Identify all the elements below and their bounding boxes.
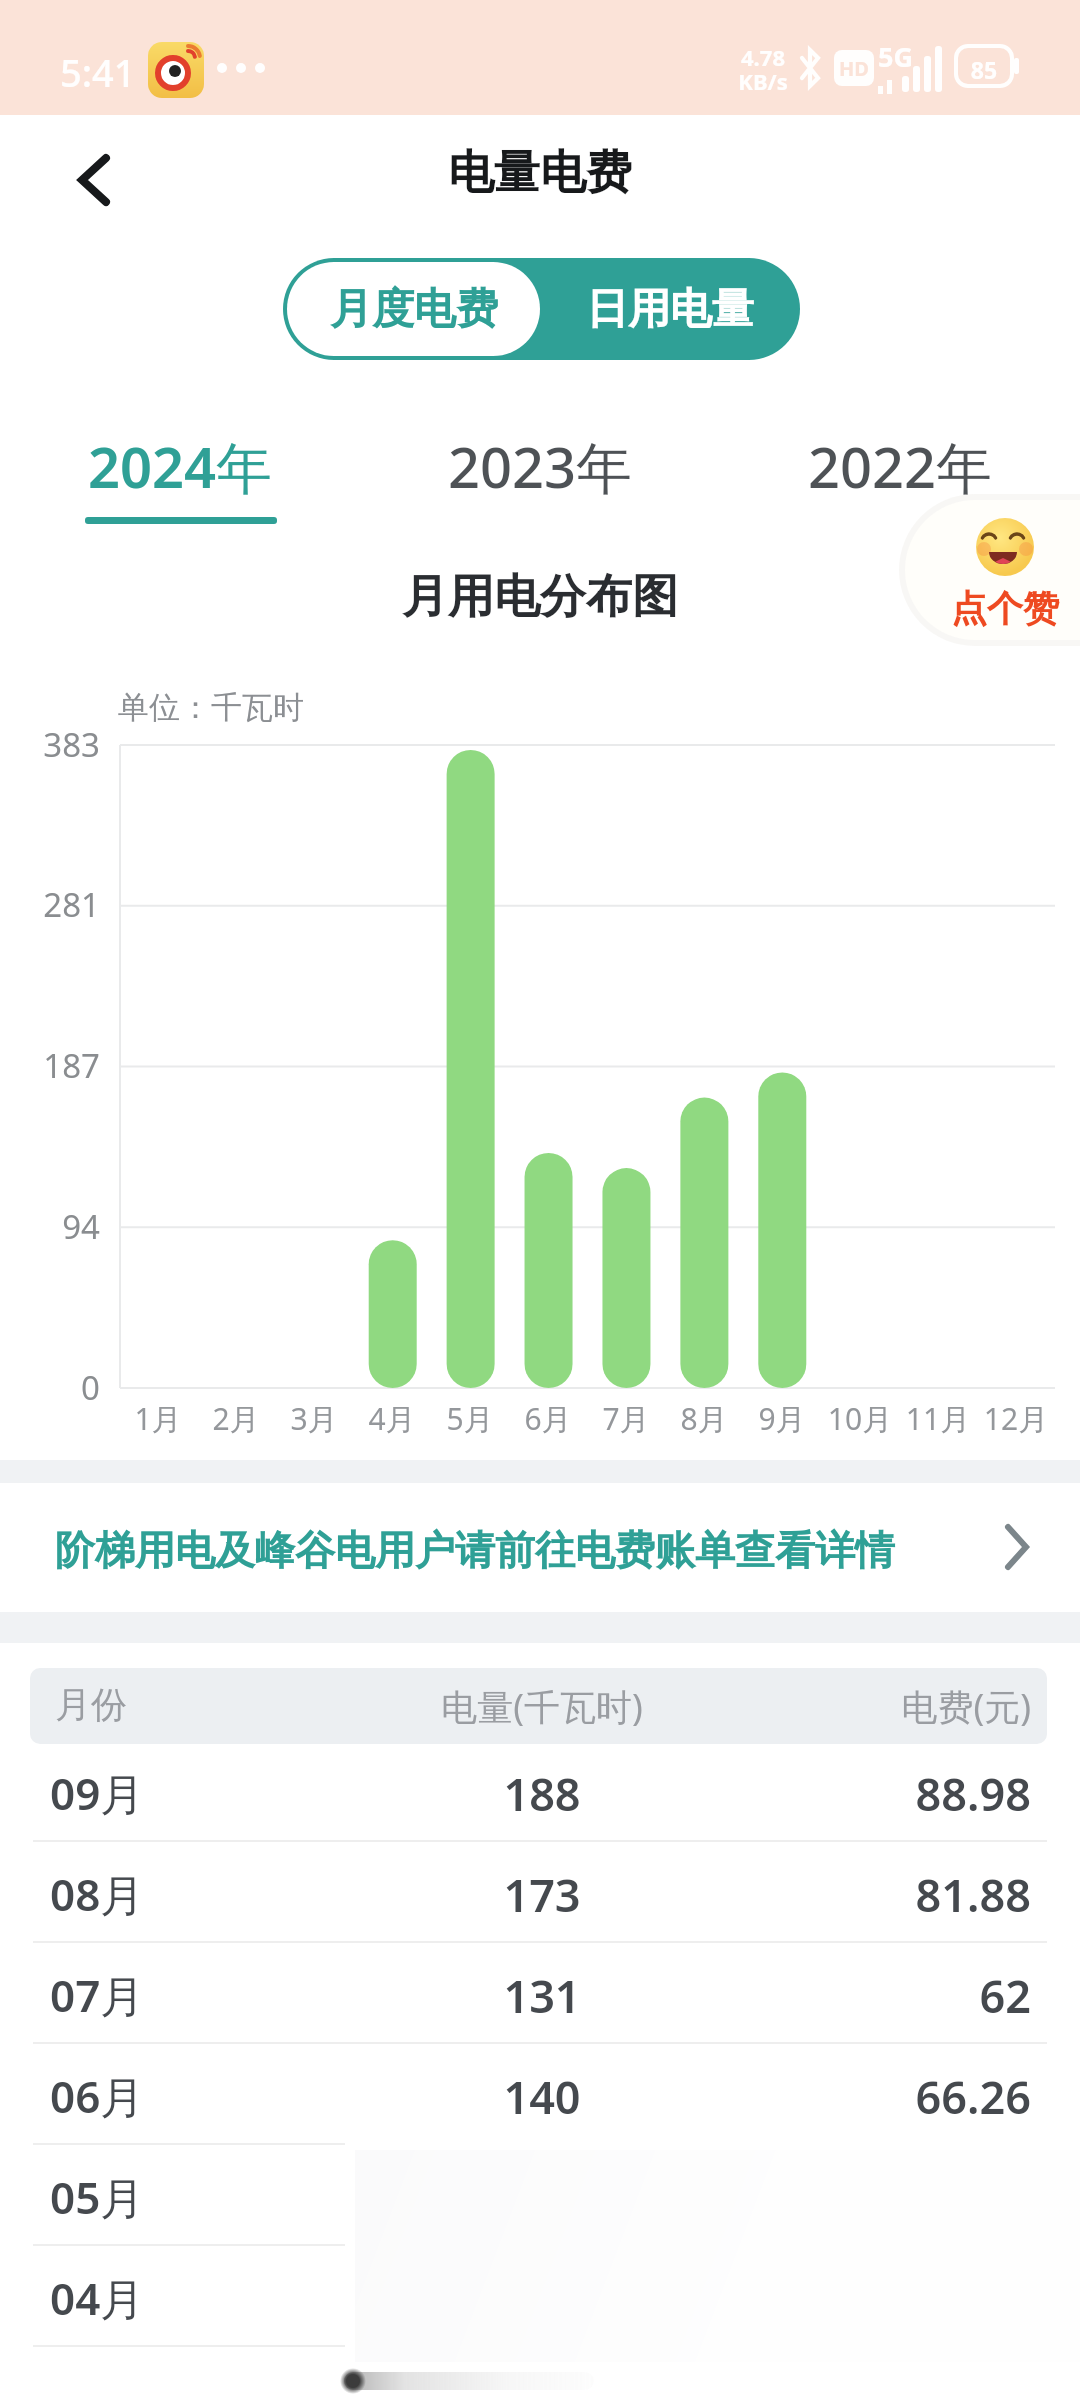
button[interactable]: 月度电费 bbox=[287, 262, 540, 356]
staticText: 1月 bbox=[98, 1398, 218, 1439]
staticText: 08月 bbox=[50, 1864, 250, 1924]
staticText: 188 bbox=[342, 1763, 742, 1824]
button[interactable]: 07月 bbox=[0, 1943, 1080, 2044]
staticText: 06月 bbox=[50, 2066, 250, 2126]
staticText: 2024年 bbox=[88, 428, 273, 504]
staticText: 5G bbox=[878, 38, 938, 75]
staticText: 8月 bbox=[644, 1398, 764, 1439]
staticText: 7月 bbox=[566, 1398, 686, 1439]
staticText: 05月 bbox=[50, 2167, 250, 2227]
button[interactable]: 09月 bbox=[0, 1741, 1080, 1842]
staticText: 2022年 bbox=[808, 428, 993, 504]
staticText: 月度电费 bbox=[330, 283, 498, 336]
button[interactable]: 06月 bbox=[0, 2044, 1080, 2145]
staticText: 2023年 bbox=[448, 428, 633, 504]
staticText: 85 bbox=[958, 54, 1010, 85]
staticText: 07月 bbox=[50, 1965, 250, 2025]
staticText: 月用电分布图 bbox=[240, 568, 840, 626]
staticText: 电费(元) bbox=[731, 1682, 1031, 1731]
staticText: HD bbox=[839, 55, 869, 82]
staticText: 140 bbox=[342, 2066, 742, 2127]
staticText: 09月 bbox=[50, 1763, 250, 1823]
staticText: 81.88 bbox=[731, 1864, 1031, 1925]
staticText: 电量电费 bbox=[240, 144, 840, 202]
button[interactable]: 08月 bbox=[0, 1842, 1080, 1943]
staticText: 281 bbox=[0, 882, 100, 927]
staticText: 单位：千瓦时 bbox=[118, 688, 418, 727]
staticText: 4.78 bbox=[728, 42, 798, 72]
staticText: 04月 bbox=[50, 2268, 250, 2328]
button[interactable]: 日用电量 bbox=[540, 258, 800, 360]
staticText: 88.98 bbox=[731, 1763, 1031, 1824]
staticText: 66.26 bbox=[731, 2066, 1031, 2127]
staticText: 11月 bbox=[878, 1398, 998, 1439]
staticText: 阶梯用电及峰谷电用户请前往电费账单查看详情 bbox=[55, 1525, 1005, 1575]
staticText: 10月 bbox=[800, 1398, 920, 1439]
staticText: 187 bbox=[0, 1043, 100, 1088]
staticText: 点个赞 bbox=[925, 586, 1080, 631]
button[interactable]: 05月 bbox=[0, 2145, 1080, 2246]
staticText: 12月 bbox=[956, 1398, 1076, 1439]
staticText: 3月 bbox=[254, 1398, 374, 1439]
staticText: 0 bbox=[0, 1365, 100, 1410]
staticText: 9月 bbox=[722, 1398, 842, 1439]
staticText: 6月 bbox=[488, 1398, 608, 1439]
button[interactable]: 点个赞 bbox=[905, 500, 1080, 640]
button[interactable]: 04月 bbox=[0, 2246, 1080, 2347]
staticText: 5:41 bbox=[60, 46, 180, 98]
button[interactable]: 2024年 bbox=[0, 428, 360, 504]
staticText: 62 bbox=[731, 1965, 1031, 2026]
staticText: 4月 bbox=[332, 1398, 452, 1439]
staticText: 电量(千瓦时) bbox=[342, 1682, 742, 1731]
button[interactable]: 阶梯用电及峰谷电用户请前往电费账单查看详情 bbox=[0, 1483, 1080, 1612]
staticText: 383 bbox=[0, 722, 100, 767]
staticText: 月份 bbox=[55, 1682, 255, 1727]
staticText: 173 bbox=[342, 1864, 742, 1925]
staticText: 131 bbox=[342, 1965, 742, 2026]
staticText: KB/s bbox=[728, 66, 798, 96]
button[interactable]: 2023年 bbox=[360, 428, 720, 504]
staticText: 2月 bbox=[176, 1398, 296, 1439]
staticText: 5月 bbox=[410, 1398, 530, 1439]
staticText: 日用电量 bbox=[586, 283, 754, 336]
button[interactable] bbox=[76, 156, 116, 204]
staticText: 94 bbox=[0, 1204, 100, 1249]
button[interactable]: 2022年 bbox=[720, 428, 1080, 504]
